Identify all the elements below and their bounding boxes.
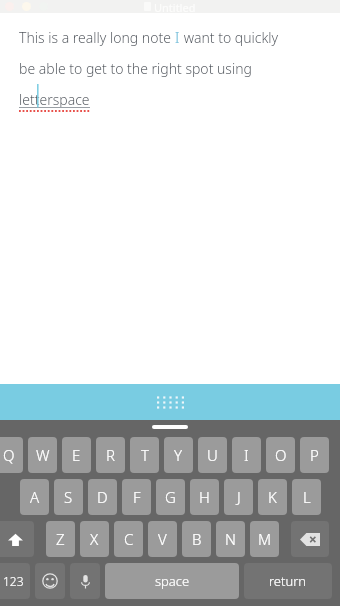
staticText: return	[269, 572, 307, 590]
staticText: O	[275, 445, 287, 465]
button[interactable]: P	[300, 437, 329, 473]
staticText: T	[141, 445, 149, 465]
staticText: S	[64, 487, 73, 507]
staticText: M	[258, 529, 272, 549]
staticText: Y	[174, 445, 183, 465]
button[interactable]: X	[80, 521, 109, 557]
staticText: N	[225, 529, 236, 549]
staticText: R	[106, 445, 115, 465]
staticText: Q	[3, 445, 15, 465]
staticText: B	[192, 529, 202, 549]
button[interactable]: M	[250, 521, 279, 557]
button[interactable]: K	[258, 479, 287, 515]
staticText: X	[90, 529, 99, 549]
staticText: This is a really long note	[19, 28, 175, 47]
staticText: U	[207, 445, 218, 465]
staticText: want to quickly	[180, 28, 279, 47]
button[interactable]: O	[266, 437, 295, 473]
button[interactable]: return	[244, 563, 332, 599]
button[interactable]: Y	[164, 437, 193, 473]
button[interactable]: Shift	[0, 521, 34, 557]
button[interactable]: V	[148, 521, 177, 557]
staticText: D	[97, 487, 108, 507]
staticText: Z	[56, 529, 65, 549]
button[interactable]: D	[88, 479, 117, 515]
button[interactable]: U	[198, 437, 227, 473]
staticText: H	[199, 487, 210, 507]
button[interactable]: C	[114, 521, 143, 557]
button[interactable]: R	[96, 437, 125, 473]
button[interactable]: B	[182, 521, 211, 557]
staticText: Untitled	[154, 0, 196, 13]
staticText: L	[303, 487, 311, 507]
staticText: G	[165, 487, 176, 507]
button[interactable]: Resize keyboard	[152, 425, 188, 429]
button[interactable]: L	[292, 479, 321, 515]
staticText: 123	[3, 573, 24, 589]
button[interactable]: S	[54, 479, 83, 515]
button[interactable]: E	[62, 437, 91, 473]
button[interactable]: Voice input	[70, 563, 100, 599]
staticText: I	[244, 445, 249, 465]
button[interactable]: Emoji	[35, 563, 65, 599]
staticText: I	[175, 28, 180, 47]
button[interactable]: N	[216, 521, 245, 557]
staticText: P	[310, 445, 319, 465]
staticText: be able to get to the right spot using	[19, 59, 252, 78]
button[interactable]: Z	[46, 521, 75, 557]
staticText: W	[36, 445, 50, 465]
staticText: V	[158, 529, 167, 549]
staticText: E	[72, 445, 81, 465]
button[interactable]: W	[28, 437, 57, 473]
staticText: A	[30, 487, 40, 507]
button[interactable]: F	[122, 479, 151, 515]
button[interactable]: A	[20, 479, 49, 515]
staticText: F	[133, 487, 141, 507]
staticText: K	[268, 487, 277, 507]
button[interactable]: 123	[0, 563, 30, 599]
button[interactable]: H	[190, 479, 219, 515]
button[interactable]: Minimize	[22, 2, 31, 11]
button[interactable]: space	[105, 563, 239, 599]
button[interactable]: I	[232, 437, 261, 473]
staticText: C	[124, 529, 134, 549]
button[interactable]: G	[156, 479, 185, 515]
button[interactable]: Letterspace slider	[0, 384, 340, 420]
button[interactable]: Q	[0, 437, 23, 473]
staticText: J	[237, 487, 241, 507]
button[interactable]: Close	[5, 2, 14, 11]
button[interactable]: Backspace	[291, 521, 329, 557]
button[interactable]: J	[224, 479, 253, 515]
staticText: space	[155, 572, 190, 590]
button[interactable]: T	[130, 437, 159, 473]
staticText: letterspace	[19, 90, 90, 109]
